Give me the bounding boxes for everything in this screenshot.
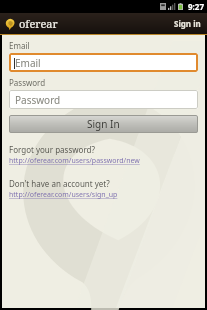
button[interactable]: Sign In [9, 115, 198, 133]
button[interactable]: oferear [4, 16, 58, 31]
staticText: Sign In [87, 117, 120, 131]
staticText: 9:27 [188, 1, 204, 12]
staticText: Don't have an account yet? [9, 178, 110, 189]
staticText: http://oferear.com/users/sign_up [9, 190, 118, 200]
staticText: Sign in [174, 18, 201, 29]
staticText: oferear [19, 16, 58, 31]
button[interactable]: Don't have an account yet? [9, 178, 118, 200]
staticText: Forgot your password? [9, 144, 95, 155]
button[interactable]: Sign in [168, 13, 207, 34]
staticText: Email [9, 40, 30, 51]
button[interactable]: Password [9, 90, 198, 109]
button[interactable]: Email [9, 53, 198, 72]
button[interactable]: Forgot your password? [9, 144, 140, 166]
staticText: Email [15, 56, 41, 70]
staticText: http://oferear.com/users/password/new [9, 156, 140, 166]
staticText: Password [15, 93, 61, 107]
staticText: Password [9, 77, 46, 88]
